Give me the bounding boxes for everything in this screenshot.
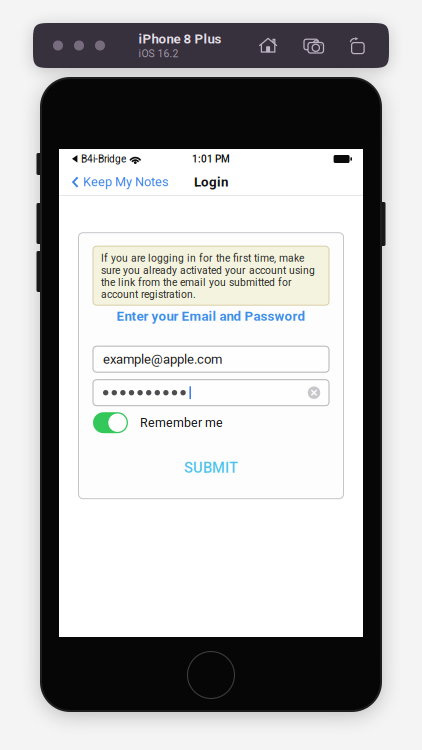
button[interactable]: Screenshot: [301, 33, 327, 57]
button[interactable]: SUBMIT: [93, 457, 329, 479]
button[interactable]: Rotate: [347, 33, 369, 57]
staticText: If you are logging in for the first time…: [101, 252, 315, 301]
staticText: SUBMIT: [184, 459, 238, 476]
staticText: iOS 16.2: [138, 48, 178, 60]
button[interactable]: Clear password: [304, 382, 324, 404]
staticText: example@apple.com: [103, 351, 222, 367]
button[interactable]: Remember me: [93, 412, 128, 433]
button[interactable]: Keep My Notes: [59, 169, 177, 195]
staticText: B4i-Bridge: [78, 153, 126, 165]
button[interactable]: Home: [255, 33, 281, 57]
staticText: Keep My Notes: [83, 175, 169, 189]
staticText: Enter your Email and Password: [116, 308, 305, 324]
staticText: iPhone 8 Plus: [138, 31, 221, 47]
staticText: Remember me: [140, 415, 223, 430]
staticText: 1:01 PM: [192, 153, 230, 165]
staticText: Login: [194, 174, 228, 190]
